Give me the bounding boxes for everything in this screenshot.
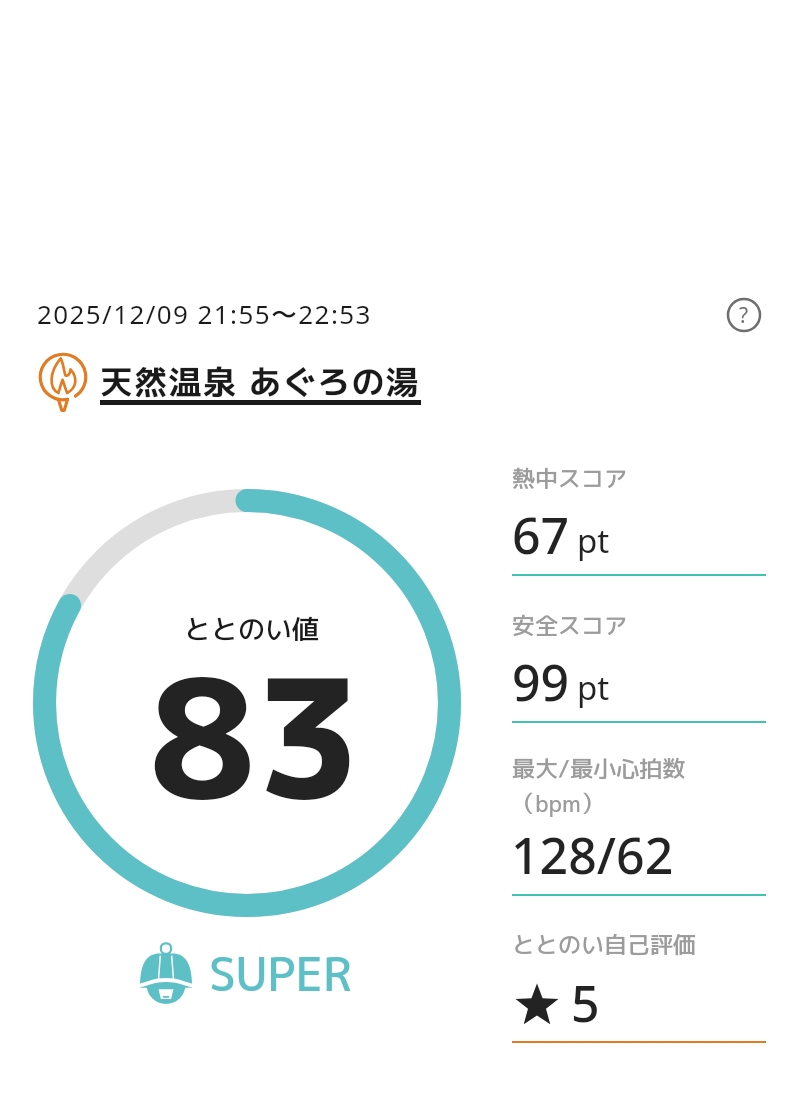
staticText: 安全スコア	[512, 609, 627, 641]
button[interactable]: Help	[726, 297, 762, 333]
staticText: pt	[577, 518, 610, 563]
staticText: 2025/12/09 21:55〜22:53	[37, 296, 372, 332]
staticText: 熱中スコア	[512, 462, 627, 494]
staticText: ととのい値	[184, 610, 319, 648]
staticText: 128/62	[511, 821, 674, 889]
staticText: （bpm）	[512, 787, 604, 819]
staticText: 5	[571, 969, 600, 1037]
staticText: 67	[512, 501, 570, 569]
staticText: ととのい自己評価	[512, 928, 696, 960]
button[interactable]: 天然温泉 あぐろの湯	[30, 350, 421, 416]
staticText: 99	[512, 648, 570, 716]
staticText: 最大/最小心拍数	[512, 752, 686, 784]
staticText: pt	[577, 665, 610, 710]
staticText: SUPER	[209, 942, 353, 1006]
staticText: 83	[149, 622, 363, 851]
staticText: 天然温泉 あぐろの湯	[100, 359, 421, 405]
button[interactable]: SUPER	[136, 942, 353, 1006]
staticText: ?	[739, 301, 749, 330]
button[interactable]: 5	[514, 971, 600, 1039]
